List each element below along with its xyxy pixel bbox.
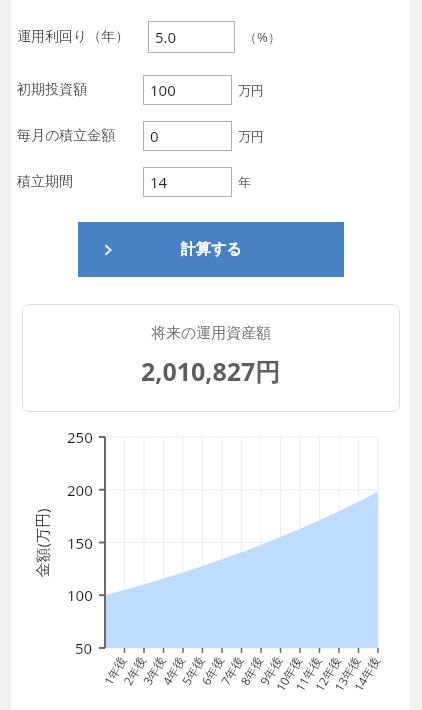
staticText: 万円 xyxy=(238,82,264,98)
staticText: 将来の運用資産額 xyxy=(151,324,272,343)
button[interactable]: 5.0 xyxy=(148,21,235,53)
button[interactable]: 100 xyxy=(143,75,232,105)
staticText: 毎月の積立金額 xyxy=(17,127,116,145)
staticText: 積立期間 xyxy=(17,173,73,191)
staticText: 100 xyxy=(150,80,176,100)
staticText: （%） xyxy=(244,28,281,46)
staticText: 運用利回り（年） xyxy=(17,28,130,46)
button[interactable]: 0 xyxy=(143,121,232,151)
staticText: 初期投資額 xyxy=(17,81,87,99)
staticText: 14 xyxy=(150,172,168,192)
staticText: 2,010,827円 xyxy=(141,354,281,388)
button[interactable]: 14 xyxy=(143,167,232,197)
staticText: 万円 xyxy=(238,128,264,144)
button[interactable]: 将来の運用資産額 xyxy=(22,304,400,412)
staticText: 計算する xyxy=(181,240,242,259)
staticText: 5.0 xyxy=(155,27,177,47)
staticText: 年 xyxy=(238,174,251,190)
button[interactable]: 計算する xyxy=(78,222,344,277)
staticText: 0 xyxy=(150,126,159,146)
